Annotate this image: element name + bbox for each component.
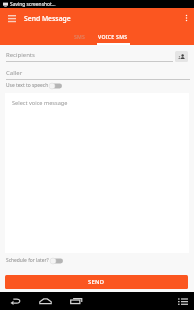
button[interactable]: Pick contacts [175,51,188,62]
staticText: Use text to speech [6,82,49,89]
button[interactable]: Navigation drawer [0,8,23,28]
button[interactable]: SEND [5,275,188,289]
staticText: Caller [6,69,23,77]
button[interactable]: Back [6,292,24,310]
staticText: Schedule for later? [6,257,49,264]
button[interactable]: Home [36,292,54,310]
staticText: SMS [74,33,86,40]
staticText: VOICE SMS [98,33,128,40]
button[interactable]: SMS [64,28,97,45]
button[interactable]: Schedule for later? [6,257,194,264]
button[interactable]: Recent apps [67,292,85,310]
button[interactable]: More options [178,8,194,28]
staticText: Select voice message [12,99,68,107]
staticText: SEND [88,278,105,286]
button[interactable]: Menu [175,292,191,310]
staticText: Recipients [6,51,35,59]
button[interactable]: Use text to speech [6,82,194,89]
staticText: Saving screenshot... [10,1,56,8]
button[interactable]: VOICE SMS [97,28,130,45]
staticText: Send Message [24,14,71,23]
